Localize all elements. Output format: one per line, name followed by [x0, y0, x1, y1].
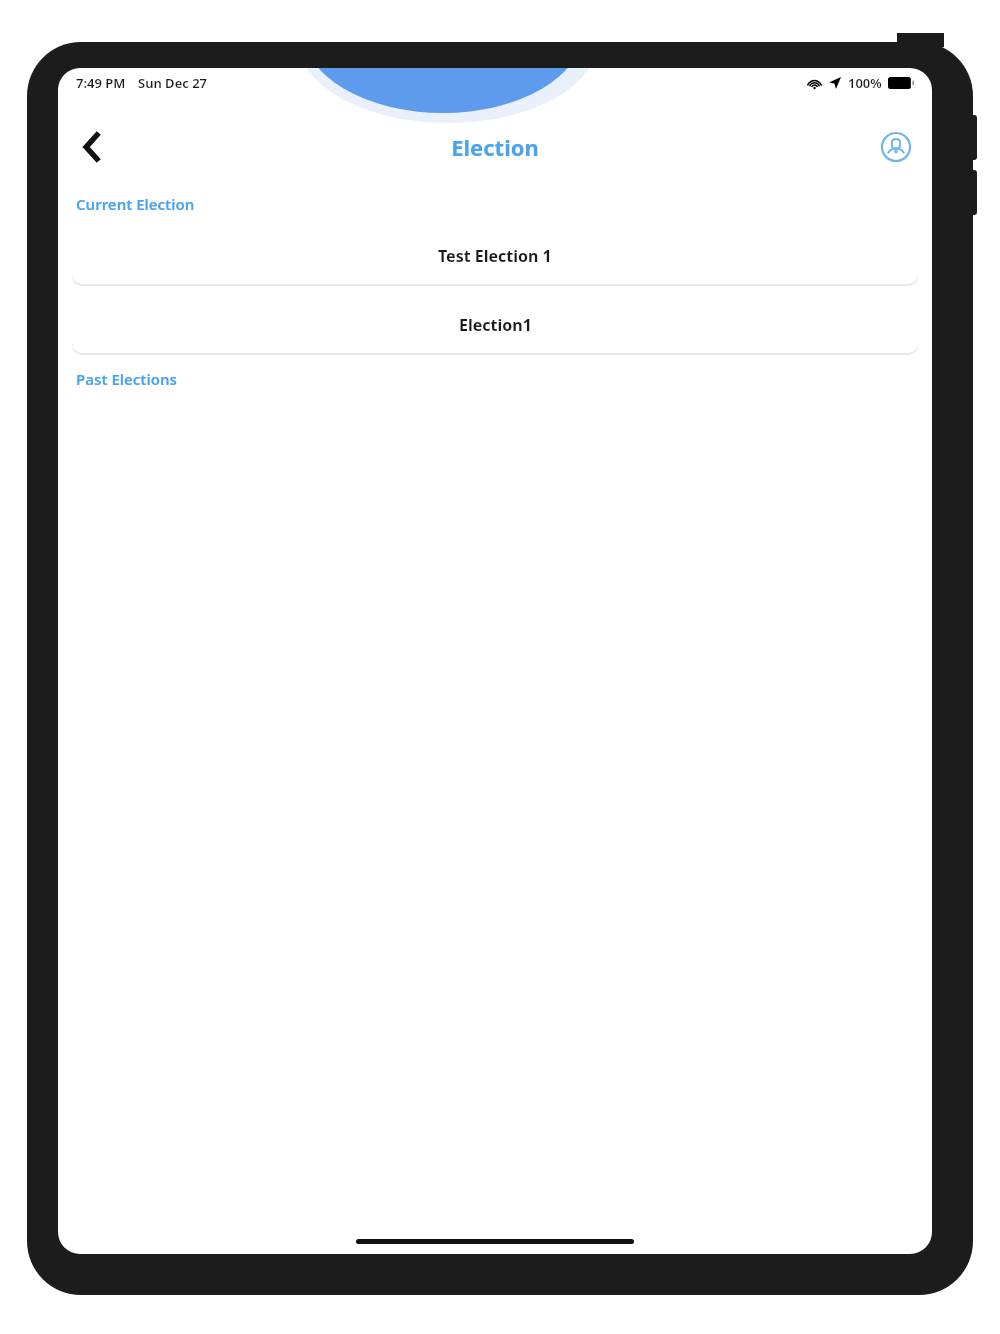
staticText: Past Elections [76, 369, 177, 389]
button[interactable]: Back [66, 124, 120, 170]
button[interactable]: Test Election 1 [72, 228, 918, 284]
staticText: 7:49 PM [76, 74, 126, 92]
staticText: 100% [848, 74, 882, 92]
button[interactable]: Election1 [72, 297, 918, 353]
button[interactable]: Profile [870, 124, 922, 170]
staticText: Test Election 1 [438, 245, 552, 267]
staticText: Election [451, 132, 539, 162]
staticText: Election1 [459, 314, 532, 336]
staticText: Current Election [76, 194, 195, 214]
staticText: Sun Dec 27 [138, 74, 208, 92]
